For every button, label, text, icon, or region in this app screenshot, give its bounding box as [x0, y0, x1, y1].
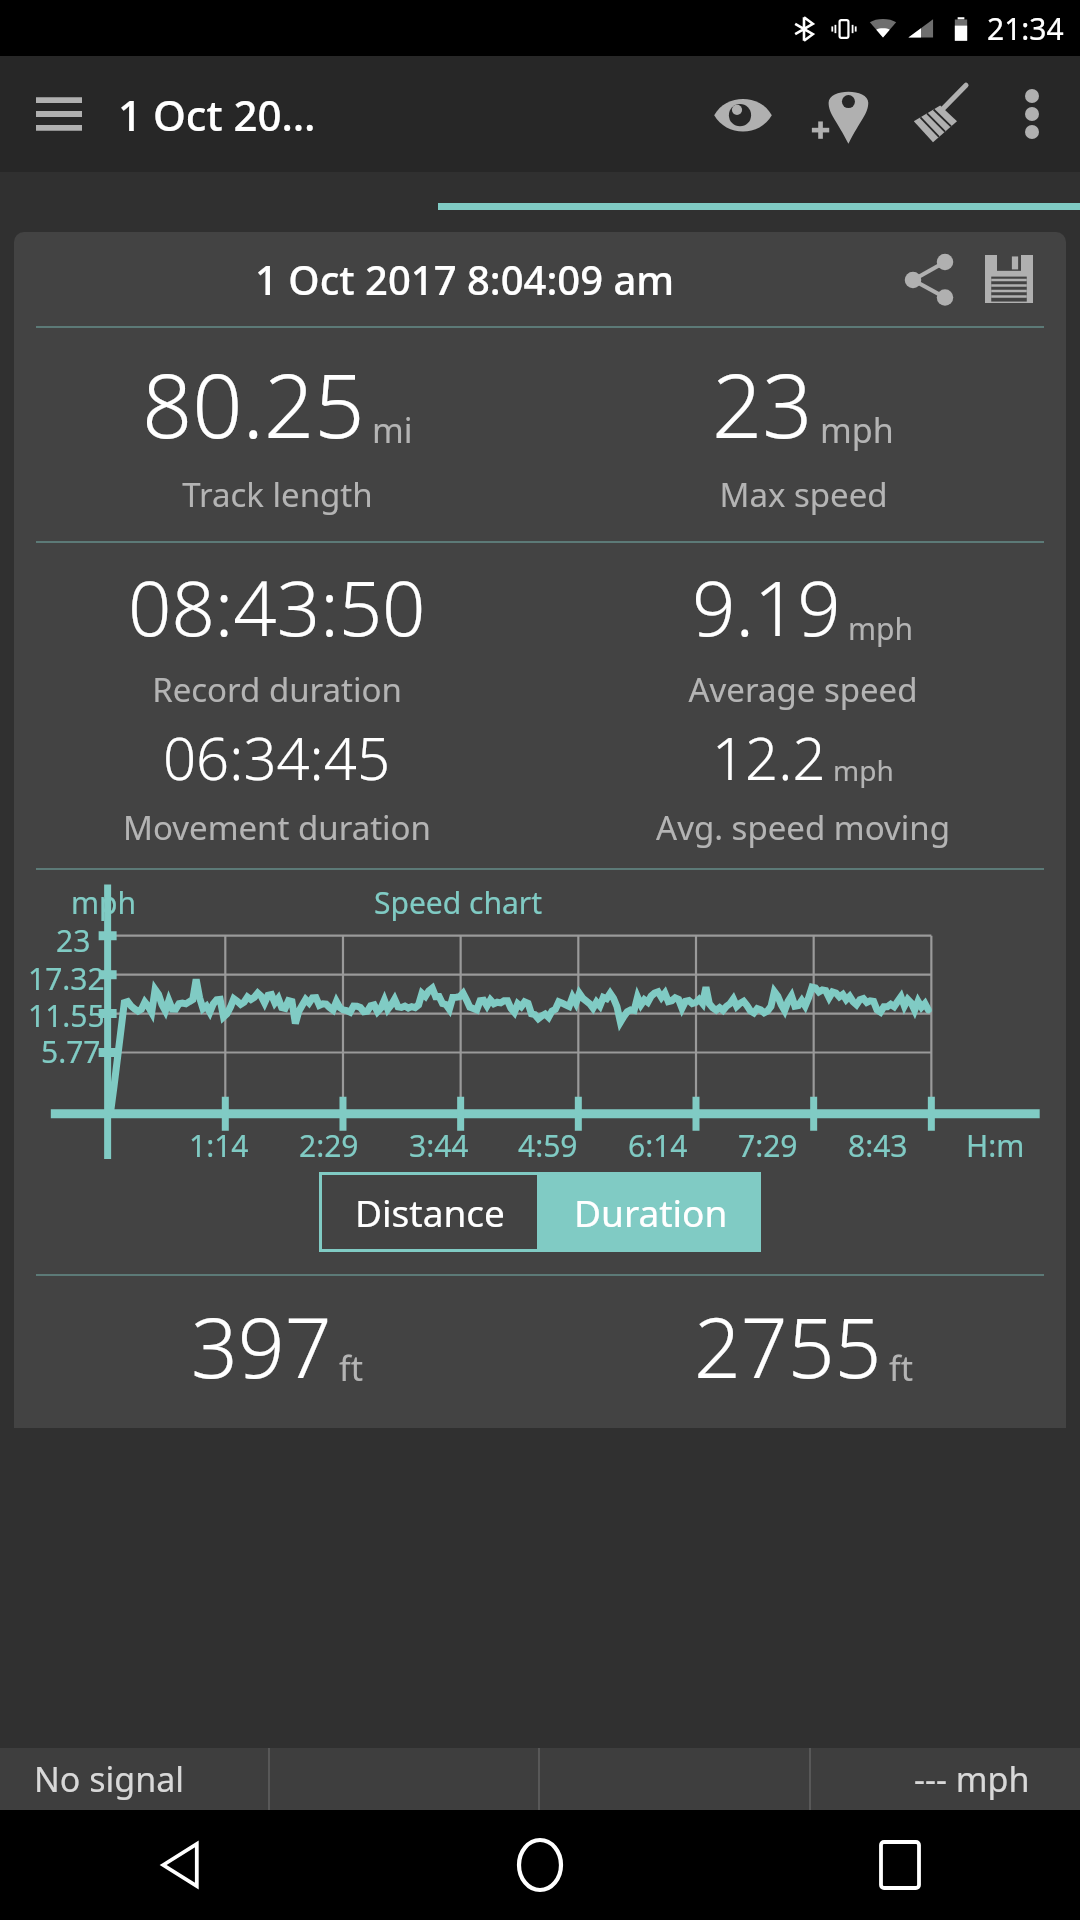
button[interactable]: Add waypoint: [792, 56, 890, 172]
button[interactable]: --- mph: [811, 1748, 1080, 1810]
staticText: Track length: [182, 472, 373, 517]
staticText: 08:43:50: [128, 555, 426, 659]
staticText: Max speed: [719, 472, 888, 517]
staticText: ft: [339, 1345, 363, 1391]
staticText: Avg. speed moving: [656, 805, 950, 850]
button[interactable]: Recent apps: [720, 1810, 1080, 1920]
staticText: 21:34: [987, 8, 1064, 49]
button[interactable]: Show track: [694, 56, 792, 172]
staticText: --- mph: [914, 1756, 1030, 1802]
staticText: Speed chart: [374, 882, 542, 923]
staticText: 11.55: [28, 995, 105, 1036]
button[interactable]: Save: [976, 246, 1042, 312]
button[interactable]: Back: [0, 1810, 360, 1920]
button[interactable]: Duration: [540, 1172, 761, 1252]
staticText: mph: [820, 407, 894, 453]
button[interactable]: Home: [360, 1810, 720, 1920]
staticText: mph: [833, 751, 894, 789]
staticText: mi: [372, 407, 413, 453]
staticText: Movement duration: [123, 805, 431, 850]
staticText: 5.77: [41, 1031, 101, 1072]
staticText: Record duration: [152, 667, 402, 712]
staticText: Distance: [355, 1187, 505, 1237]
staticText: Duration: [574, 1187, 728, 1237]
staticText: Average speed: [688, 667, 918, 712]
staticText: No signal: [34, 1756, 185, 1802]
staticText: mph: [71, 882, 137, 923]
staticText: 7:29: [738, 1125, 798, 1162]
staticText: 9.19: [692, 555, 841, 659]
staticText: 2:29: [299, 1125, 359, 1162]
button[interactable]: More options: [988, 56, 1076, 172]
staticText: 23: [56, 920, 91, 961]
staticText: 397: [191, 1290, 332, 1402]
staticText: mph: [848, 608, 914, 649]
staticText: 4:59: [518, 1125, 578, 1162]
staticText: 06:34:45: [163, 718, 391, 797]
staticText: 1 Oct 2017 8:04:09 am: [255, 252, 675, 306]
staticText: ft: [889, 1345, 913, 1391]
staticText: 1 Oct 20…: [118, 86, 316, 143]
staticText: 6:14: [628, 1125, 688, 1162]
button[interactable]: Clean track: [890, 56, 988, 172]
staticText: H:m: [966, 1125, 1025, 1162]
staticText: 23: [712, 344, 813, 464]
staticText: 17.32: [28, 958, 105, 999]
staticText: 12.2: [712, 718, 826, 797]
staticText: 3:44: [409, 1125, 469, 1162]
staticText: 2755: [694, 1290, 882, 1402]
staticText: 80.25: [142, 344, 365, 464]
button[interactable]: Distance: [322, 1175, 537, 1249]
button[interactable]: Open navigation drawer: [0, 56, 118, 172]
button[interactable]: No signal: [0, 1748, 268, 1810]
staticText: 8:43: [848, 1125, 908, 1162]
staticText: 1:14: [189, 1125, 249, 1162]
button[interactable]: Share: [896, 246, 962, 312]
